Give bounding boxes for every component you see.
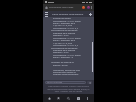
- staticText: Free Research Preview. ChatGPT may produ…: [46, 85, 91, 92]
- staticText: Circonférence = 2 * π * Rayon: [53, 54, 81, 57]
- button[interactable]: Tabs: [75, 95, 82, 102]
- button[interactable]: Home: [46, 95, 53, 102]
- staticText: Circonférence de l'extrémité: [51, 29, 78, 32]
- staticText: Diamètre = 2 cm: [53, 51, 69, 54]
- staticText: Diamètre = 2 cm: [53, 34, 69, 37]
- button[interactable]: Profile: [82, 6, 85, 9]
- button[interactable]: Account: [87, 6, 90, 9]
- staticText: mesures pour obtenir la: [53, 71, 76, 74]
- staticText: Rayon = épaisseur / 2: [53, 56, 74, 59]
- button[interactable]: Send: [87, 81, 92, 84]
- staticText: = 0,6 cm / 2 = 0,3 cm: [53, 42, 73, 45]
- staticText: Rayon = épaisseur de la: [53, 22, 76, 25]
- button[interactable]: Search: [65, 95, 72, 102]
- button[interactable]: More options: [84, 95, 91, 102]
- staticText: Longueur du câble de la: [51, 61, 74, 64]
- staticText: planche : 89 cm: [53, 64, 68, 67]
- staticText: chat.openai.com/c/f6b0: [49, 6, 74, 9]
- button[interactable]: New chat: [89, 13, 92, 16]
- staticText: Circonférence de l'extrémité: [51, 46, 78, 49]
- button[interactable]: Send a message: [45, 81, 86, 84]
- staticText: Circonférence = 2 * π * 0,3: [53, 44, 78, 47]
- staticText: inférieure de la planche: [53, 32, 76, 35]
- staticText: longueur totale nécessaire :: [53, 73, 80, 76]
- staticText: arrondir les cordes: [53, 17, 71, 20]
- staticText: Circonférence = 2 * π * Rayon: [53, 19, 81, 22]
- staticText: Send a message: [47, 81, 63, 84]
- staticText: 3: [78, 97, 80, 100]
- button[interactable]: Menu: [45, 12, 48, 17]
- button[interactable]: Address bar: [43, 4, 94, 11]
- button[interactable]: Bookmarks: [55, 95, 62, 102]
- staticText: Circonférence = 2 * π * Rayon: [53, 37, 81, 40]
- staticText: Rayon = épaisseur de la: [53, 39, 76, 42]
- staticText: Circonférence = 2 * π * 0,3: [53, 27, 78, 30]
- staticText: Maintenant, ajoutez ces trois: [53, 69, 81, 72]
- staticText: Calcul longueur corde planche: [52, 13, 84, 16]
- staticText: inférieure de la planche: [53, 49, 76, 52]
- staticText: = 0,6 cm / 2 = 0,3 cm: [53, 24, 73, 27]
